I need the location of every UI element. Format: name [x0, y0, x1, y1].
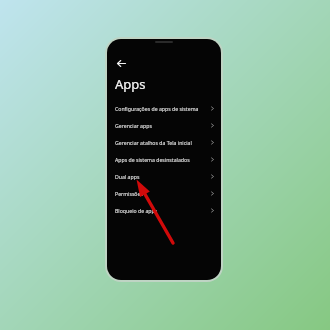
staticText: Permissões: [115, 190, 207, 197]
button[interactable]: Gerenciar atalhos da Tela inicial: [107, 134, 221, 151]
button[interactable]: Back: [113, 55, 129, 71]
staticText: Configurações de apps de sistema: [115, 105, 207, 112]
button[interactable]: Configurações de apps de sistema: [107, 100, 221, 117]
button[interactable]: Apps de sistema desinstalados: [107, 151, 221, 168]
staticText: Dual apps: [115, 173, 207, 180]
button[interactable]: Dual apps: [107, 168, 221, 185]
staticText: Apps de sistema desinstalados: [115, 156, 207, 163]
staticText: Gerenciar apps: [115, 122, 207, 129]
button[interactable]: Permissões: [107, 185, 221, 202]
button[interactable]: Gerenciar apps: [107, 117, 221, 134]
button[interactable]: Bloqueio de apps: [107, 202, 221, 219]
staticText: Apps: [115, 75, 146, 93]
staticText: Gerenciar atalhos da Tela inicial: [115, 139, 207, 146]
staticText: Bloqueio de apps: [115, 207, 207, 214]
